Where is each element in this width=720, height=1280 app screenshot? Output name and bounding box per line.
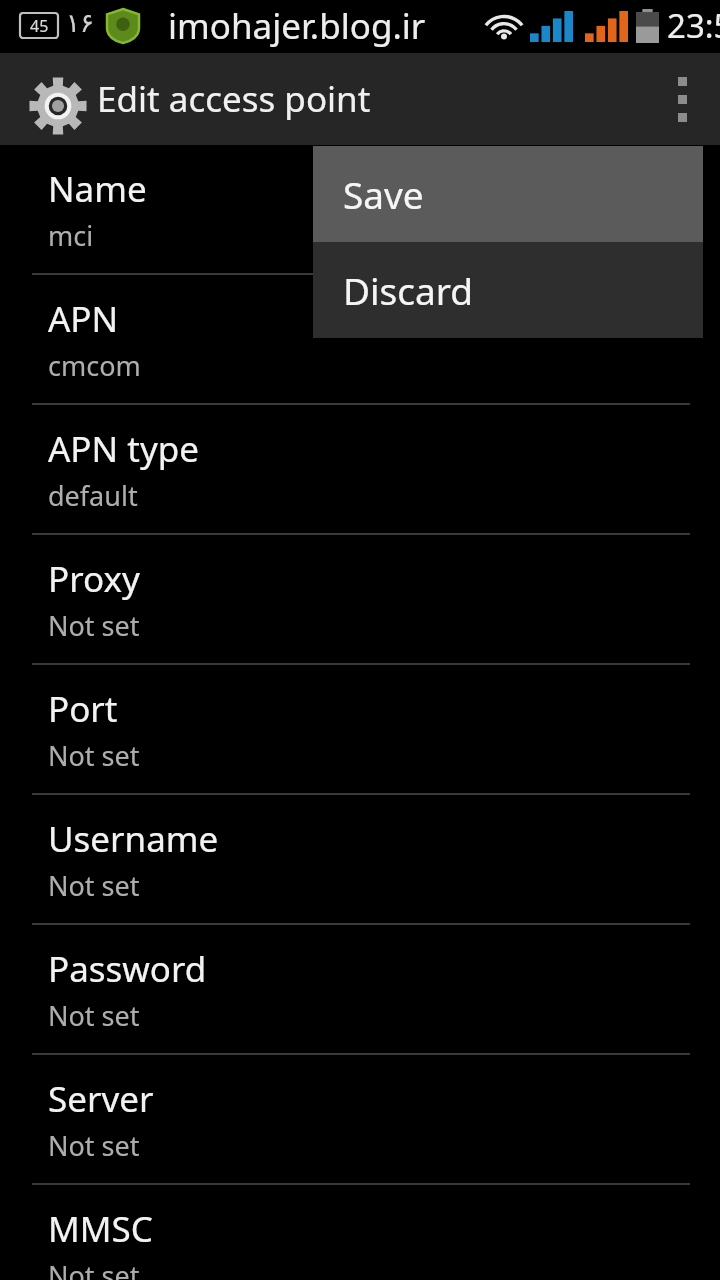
button[interactable]: MMSC [0,1185,720,1280]
staticText: imohajer.blog.ir [168,2,426,50]
button[interactable]: Password [0,925,720,1053]
staticText: Not set [48,867,140,904]
staticText: Username [48,815,219,863]
staticText: Not set [48,1257,140,1280]
staticText: Proxy [48,555,140,603]
button[interactable]: Server [0,1055,720,1183]
other: Settings [29,77,87,135]
staticText: Save [343,169,424,219]
staticText: Password [48,945,207,993]
button[interactable]: Port [0,665,720,793]
staticText: default [48,477,138,514]
button[interactable]: APN [0,275,720,403]
button[interactable]: Save [313,146,703,242]
staticText: cmcom [48,347,141,384]
staticText: Not set [48,997,140,1034]
button[interactable]: Discard [313,242,703,338]
button[interactable]: More options [644,53,720,145]
staticText: 23:59 [667,3,720,48]
staticText: Port [48,685,118,733]
staticText: Discard [343,265,474,315]
button[interactable]: Proxy [0,535,720,663]
staticText: mci [48,217,94,254]
staticText: Name [48,165,147,213]
staticText: 45 [30,15,49,37]
staticText: MMSC [48,1205,153,1253]
button[interactable]: APN type [0,405,720,533]
staticText: Server [48,1075,154,1123]
staticText: Not set [48,607,140,644]
staticText: APN type [48,425,199,473]
staticText: Not set [48,737,140,774]
staticText: Not set [48,1127,140,1164]
button[interactable]: Name [0,145,720,273]
staticText: ۱۶ [66,8,94,38]
staticText: Edit access point [97,75,371,123]
button[interactable]: Username [0,795,720,923]
staticText: APN [48,295,119,343]
